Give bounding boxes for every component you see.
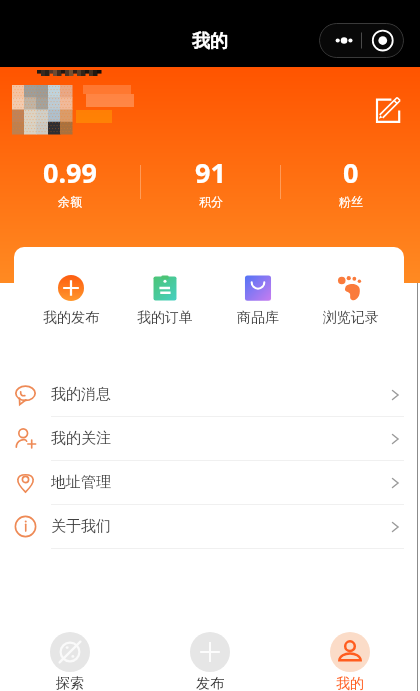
staticText: 余额 xyxy=(58,194,82,209)
staticText: 我的 xyxy=(336,675,364,691)
staticText: 粉丝 xyxy=(339,194,363,209)
button[interactable]: 我的发布 xyxy=(24,247,118,352)
staticText: 发布 xyxy=(196,675,224,691)
button[interactable]: 探索 xyxy=(0,625,140,691)
staticText: 91 xyxy=(195,154,226,191)
staticText: 我的消息 xyxy=(51,385,111,404)
staticText: 我的关注 xyxy=(51,429,111,448)
button[interactable]: 0.99 xyxy=(0,154,140,209)
button[interactable]: 我的消息 xyxy=(0,373,420,416)
button[interactable]: 我的订单 xyxy=(118,247,211,352)
button[interactable]: 91 xyxy=(141,154,280,209)
staticText: 商品库 xyxy=(237,309,279,327)
staticText: 0 xyxy=(343,154,359,191)
button[interactable]: 0 xyxy=(281,154,420,209)
staticText: 地址管理 xyxy=(51,473,111,492)
staticText: 探索 xyxy=(56,675,84,691)
button[interactable]: 浏览记录 xyxy=(304,247,397,352)
button[interactable]: 地址管理 xyxy=(0,461,420,504)
button[interactable]: 商品库 xyxy=(211,247,304,352)
staticText: 0.99 xyxy=(43,154,97,191)
button[interactable]: Menu xyxy=(319,23,404,58)
button[interactable]: 我的 xyxy=(280,625,420,691)
button[interactable]: 关于我们 xyxy=(0,505,420,548)
button[interactable]: 发布 xyxy=(140,625,280,691)
staticText: 关于我们 xyxy=(51,517,111,536)
button[interactable]: Edit profile xyxy=(374,93,404,123)
staticText: 我的 xyxy=(192,30,228,53)
button[interactable]: 我的关注 xyxy=(0,417,420,460)
staticText: 积分 xyxy=(199,194,223,209)
staticText: 我的订单 xyxy=(137,309,193,327)
staticText: 浏览记录 xyxy=(323,309,379,327)
staticText: 我的发布 xyxy=(43,309,99,327)
